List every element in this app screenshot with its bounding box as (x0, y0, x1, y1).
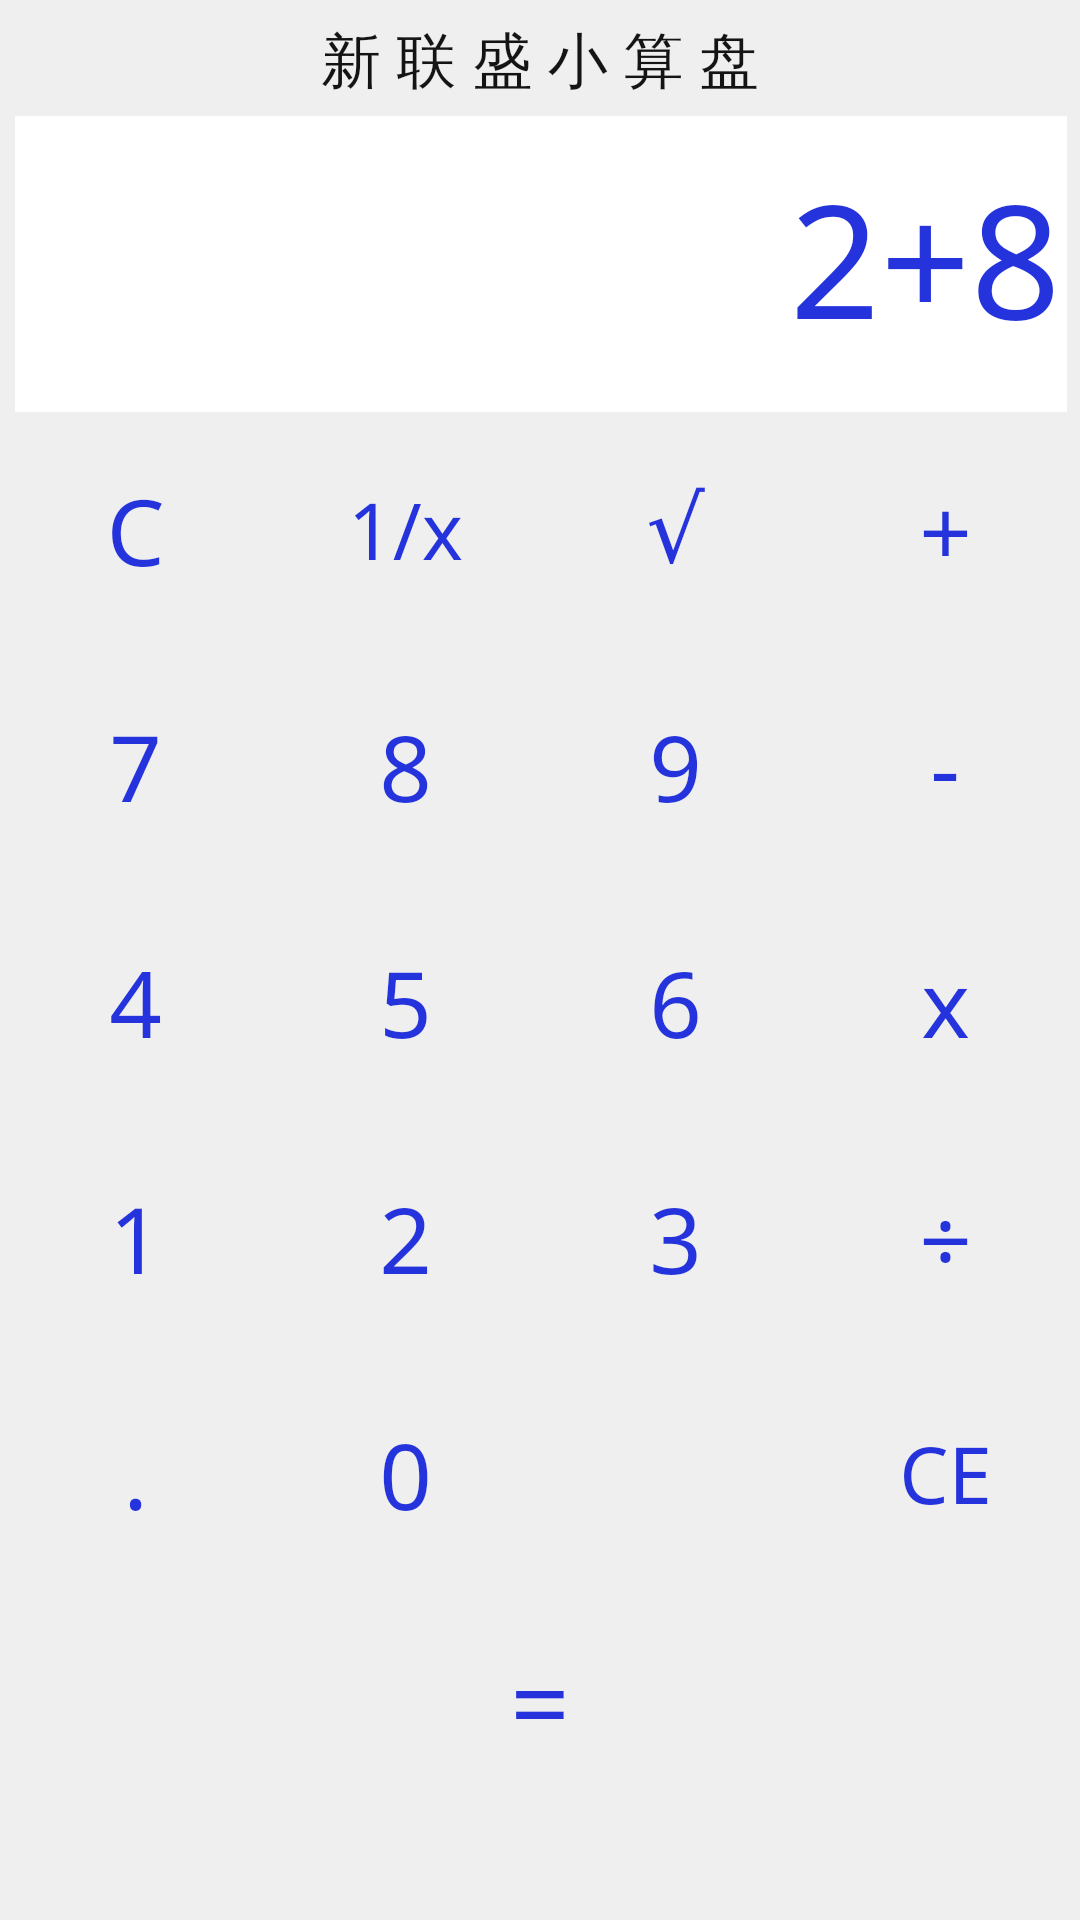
button[interactable]: CE (810, 1356, 1080, 1592)
staticText: 6 (649, 940, 702, 1065)
staticText: 9 (649, 704, 702, 829)
button[interactable]: 2 (270, 1120, 540, 1356)
staticText: . (123, 1412, 148, 1537)
staticText: - (930, 704, 960, 829)
staticText: 2+8 (789, 150, 1061, 365)
button[interactable]: 8 (270, 648, 540, 884)
staticText: 0 (379, 1412, 432, 1537)
button[interactable]: 4 (0, 884, 270, 1120)
button[interactable]: C (0, 412, 270, 648)
staticText: 5 (379, 940, 432, 1065)
button[interactable]: Add (810, 412, 1080, 648)
staticText: ÷ (919, 1176, 972, 1301)
button[interactable]: Subtract (810, 648, 1080, 884)
button[interactable]: Divide (810, 1120, 1080, 1356)
button[interactable]: Multiply (810, 884, 1080, 1120)
button[interactable]: 0 (270, 1356, 540, 1592)
button[interactable]: 1/x (270, 412, 540, 648)
button[interactable]: 6 (540, 884, 810, 1120)
staticText: + (919, 468, 972, 593)
button[interactable]: 2+8 (15, 116, 1067, 412)
button[interactable]: 7 (0, 648, 270, 884)
button[interactable]: Equals (405, 1592, 675, 1812)
staticText: C (106, 468, 165, 593)
staticText: 2 (379, 1176, 432, 1301)
staticText: 1/x (348, 477, 463, 583)
staticText: √ (646, 477, 705, 584)
button[interactable]: 1 (0, 1120, 270, 1356)
staticText: x (921, 940, 970, 1065)
staticText: CE (899, 1421, 992, 1527)
button[interactable]: Decimal point (0, 1356, 270, 1592)
staticText: 3 (649, 1176, 702, 1301)
staticText: 7 (109, 704, 162, 829)
button[interactable]: 5 (270, 884, 540, 1120)
staticText: 4 (109, 940, 162, 1065)
button[interactable]: 3 (540, 1120, 810, 1356)
staticText: 1 (109, 1176, 162, 1301)
staticText: 8 (379, 704, 432, 829)
staticText: = (510, 1631, 570, 1773)
button[interactable]: 9 (540, 648, 810, 884)
staticText: 新 联 盛 小 算 盘 (321, 18, 759, 100)
button[interactable]: Square root (540, 412, 810, 648)
